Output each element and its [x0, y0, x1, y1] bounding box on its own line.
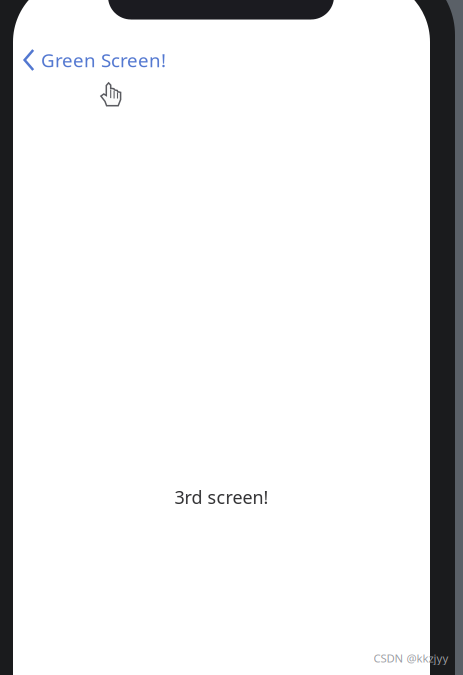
staticText: 3rd screen!: [174, 485, 268, 509]
staticText: CSDN @kkzjyy: [373, 650, 448, 666]
staticText: Green Screen!: [41, 47, 166, 73]
button[interactable]: Green Screen!: [17, 40, 171, 80]
